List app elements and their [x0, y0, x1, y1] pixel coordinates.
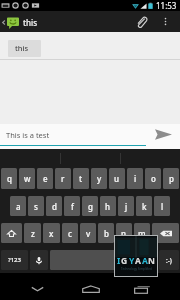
staticText: h	[105, 201, 111, 212]
staticText: this	[23, 17, 38, 28]
button[interactable]: this	[8, 40, 41, 57]
staticText: p	[169, 173, 174, 184]
button[interactable]: h	[100, 196, 116, 216]
staticText: t	[79, 173, 83, 184]
staticText: j	[125, 201, 128, 212]
button[interactable]: d	[46, 196, 62, 216]
staticText: m	[138, 228, 146, 239]
staticText: N	[148, 255, 155, 267]
staticText: .	[148, 255, 151, 266]
staticText: g	[88, 201, 93, 212]
button[interactable]: i	[127, 168, 143, 189]
button[interactable]: Attach	[128, 11, 154, 32]
button[interactable]: g	[82, 196, 98, 216]
button[interactable]: r	[55, 168, 71, 189]
staticText: e	[43, 173, 48, 184]
staticText: y	[97, 173, 102, 184]
staticText: n	[121, 228, 127, 239]
staticText: s	[34, 201, 38, 212]
staticText: f	[71, 201, 74, 212]
staticText: 11:53	[156, 0, 177, 11]
button[interactable]: w	[19, 168, 35, 189]
staticText: A	[142, 255, 148, 267]
staticText: o	[151, 173, 156, 184]
button[interactable]: f	[64, 196, 80, 216]
staticText: v	[86, 228, 91, 239]
button[interactable]: m	[134, 223, 150, 243]
staticText: ?123	[8, 256, 21, 264]
button[interactable]: Send	[146, 124, 180, 145]
button[interactable]: Voice input	[30, 250, 48, 270]
staticText: i	[134, 173, 137, 184]
button[interactable]: z	[24, 223, 41, 243]
button[interactable]: e	[37, 168, 53, 189]
button[interactable]: q	[1, 168, 17, 189]
staticText: x	[49, 228, 54, 239]
button[interactable]: :-)	[159, 250, 179, 270]
button[interactable]: o	[145, 168, 161, 189]
staticText: this	[15, 43, 29, 53]
button[interactable]: Navigate up	[0, 15, 42, 29]
button[interactable]: v	[80, 223, 96, 243]
staticText: c	[68, 228, 72, 239]
button[interactable]	[50, 250, 139, 270]
staticText: :-)	[166, 256, 172, 265]
button[interactable]: s	[28, 196, 44, 216]
staticText: z	[31, 228, 35, 239]
button[interactable]: t	[73, 168, 89, 189]
button[interactable]: p	[163, 168, 179, 189]
staticText: w	[24, 173, 31, 184]
staticText: d	[52, 201, 57, 212]
button[interactable]: n	[116, 223, 132, 243]
button[interactable]: This is a test	[0, 124, 146, 145]
staticText: A	[135, 255, 141, 267]
staticText: k	[142, 201, 147, 212]
button[interactable]: c	[62, 223, 78, 243]
staticText: q	[7, 173, 12, 184]
button[interactable]: More options	[154, 11, 176, 32]
button[interactable]: Shift	[1, 223, 22, 243]
button[interactable]: j	[118, 196, 134, 216]
button[interactable]: Hide keyboard	[21, 278, 54, 300]
button[interactable]: y	[91, 168, 107, 189]
button[interactable]: Delete	[152, 223, 179, 243]
staticText: a	[16, 201, 21, 212]
staticText: l	[161, 201, 164, 212]
staticText: I	[117, 255, 121, 267]
staticText: r	[61, 173, 65, 184]
staticText: Y	[129, 255, 135, 267]
staticText: u	[114, 173, 120, 184]
button[interactable]: k	[136, 196, 152, 216]
button[interactable]: x	[43, 223, 60, 243]
staticText: G	[121, 255, 128, 267]
button[interactable]: Home	[74, 278, 107, 300]
button[interactable]: ?123	[1, 250, 28, 270]
button[interactable]: a	[10, 196, 26, 216]
button[interactable]: u	[109, 168, 125, 189]
button[interactable]: b	[98, 223, 114, 243]
staticText: This is a test	[6, 130, 50, 140]
staticText: Technology Simplified	[121, 267, 152, 271]
staticText: b	[104, 228, 109, 239]
button[interactable]: .	[141, 250, 157, 270]
button[interactable]: l	[154, 196, 170, 216]
button[interactable]: Recent apps	[125, 278, 158, 300]
